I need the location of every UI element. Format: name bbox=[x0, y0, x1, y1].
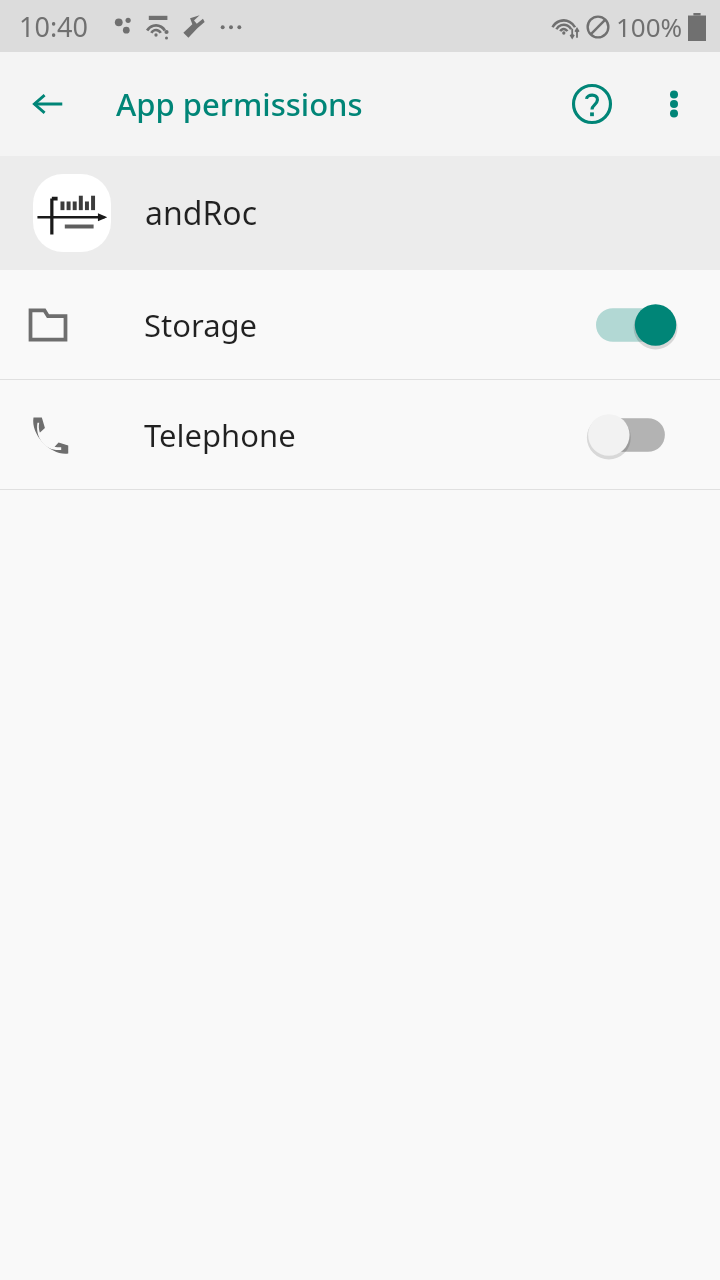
button[interactable]: Telephone bbox=[0, 380, 720, 489]
button[interactable]: More options bbox=[646, 76, 702, 132]
button[interactable]: Help bbox=[562, 74, 622, 134]
staticText: 10:40 bbox=[19, 8, 89, 45]
button[interactable]: Telephone permission toggle bbox=[596, 407, 680, 463]
button[interactable]: Storage bbox=[0, 270, 720, 379]
staticText: 100% bbox=[616, 9, 683, 44]
staticText: Storage bbox=[144, 304, 258, 346]
staticText: andRoc bbox=[145, 191, 258, 235]
button[interactable]: Storage permission toggle bbox=[596, 297, 680, 353]
button[interactable]: Back bbox=[20, 76, 76, 132]
staticText: Telephone bbox=[144, 414, 296, 456]
staticText: App permissions bbox=[116, 83, 363, 125]
